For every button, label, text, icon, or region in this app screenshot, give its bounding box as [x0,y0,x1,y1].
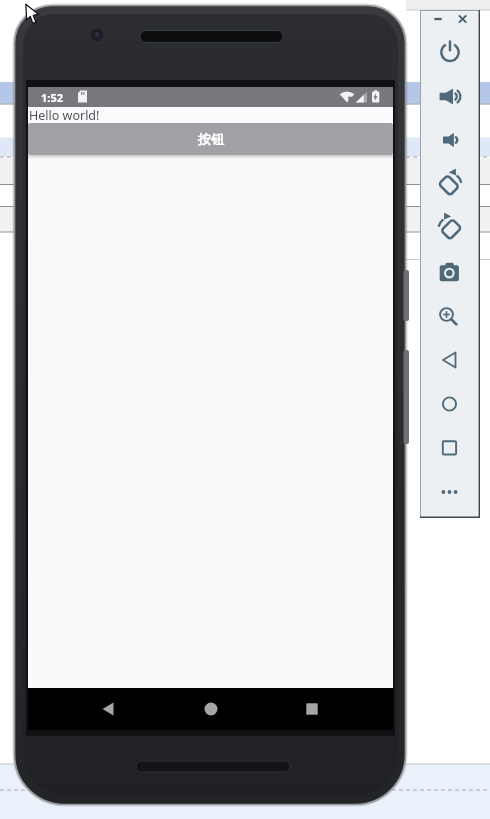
button[interactable] [191,689,231,729]
button[interactable] [432,34,468,70]
button[interactable] [88,689,128,729]
button[interactable] [292,689,332,729]
staticText: Hello world! [29,107,100,123]
button[interactable] [432,166,468,202]
button[interactable] [432,298,468,334]
button[interactable] [455,11,471,26]
button[interactable] [432,342,468,378]
button[interactable] [432,78,468,114]
button[interactable] [432,210,468,246]
button[interactable] [432,122,468,158]
button[interactable] [432,386,468,422]
button[interactable] [430,11,446,26]
button[interactable]: 按钮 [28,123,393,155]
staticText: 1:52 [41,90,63,105]
button[interactable] [432,254,468,290]
button[interactable] [432,474,468,510]
button[interactable] [432,430,468,466]
staticText: 按钮 [198,131,224,147]
